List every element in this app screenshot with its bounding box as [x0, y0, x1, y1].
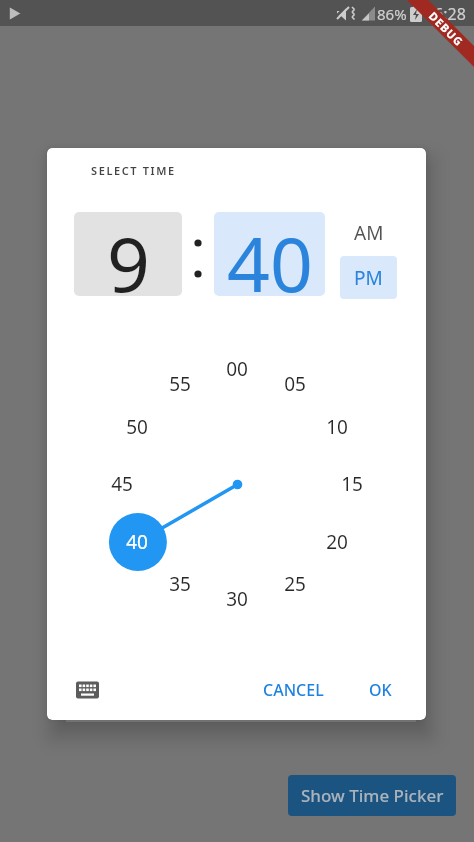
button[interactable] [67, 673, 107, 707]
staticText: 9 [107, 212, 150, 296]
button[interactable]: 40 [214, 212, 325, 296]
button[interactable]: 05 [275, 370, 315, 398]
staticText: 05 [284, 371, 306, 397]
button[interactable]: AM [340, 212, 397, 254]
staticText: 50 [126, 414, 148, 440]
button[interactable]: PM [340, 256, 397, 299]
staticText: 10 [326, 414, 348, 440]
staticText: SELECT TIME [91, 163, 176, 178]
staticText: AM [354, 220, 384, 246]
staticText: 15 [341, 471, 363, 497]
button[interactable]: 20 [317, 528, 357, 556]
button[interactable]: 10 [317, 413, 357, 441]
staticText: 00 [226, 356, 248, 382]
staticText: 40 [126, 529, 148, 555]
staticText: 86% [377, 4, 407, 23]
staticText: 35 [169, 571, 191, 597]
button[interactable]: 9 [74, 212, 182, 296]
button[interactable]: 00 [217, 355, 257, 383]
button[interactable]: CANCEL [257, 676, 329, 704]
button[interactable]: 55 [160, 370, 200, 398]
staticText: CANCEL [263, 679, 324, 701]
staticText: 45 [111, 471, 133, 497]
staticText: 55 [169, 371, 191, 397]
button[interactable]: 30 [217, 585, 257, 613]
button[interactable]: OK [362, 676, 398, 704]
button[interactable]: 25 [275, 570, 315, 598]
button[interactable]: 35 [160, 570, 200, 598]
staticText: Show Time Picker [301, 784, 444, 807]
staticText: 20 [326, 529, 348, 555]
staticText: OK [369, 679, 392, 701]
button[interactable]: 40 [117, 528, 157, 556]
staticText: DEBUG [426, 8, 467, 49]
staticText: 16:28 [425, 3, 466, 24]
button[interactable]: 50 [117, 413, 157, 441]
button[interactable]: Show Time Picker [288, 775, 456, 816]
button[interactable]: 45 [102, 470, 142, 498]
staticText: 25 [284, 571, 306, 597]
staticText: 30 [226, 586, 248, 612]
button[interactable]: 15 [332, 470, 372, 498]
staticText: PM [354, 265, 383, 291]
staticText: 40 [227, 212, 313, 296]
